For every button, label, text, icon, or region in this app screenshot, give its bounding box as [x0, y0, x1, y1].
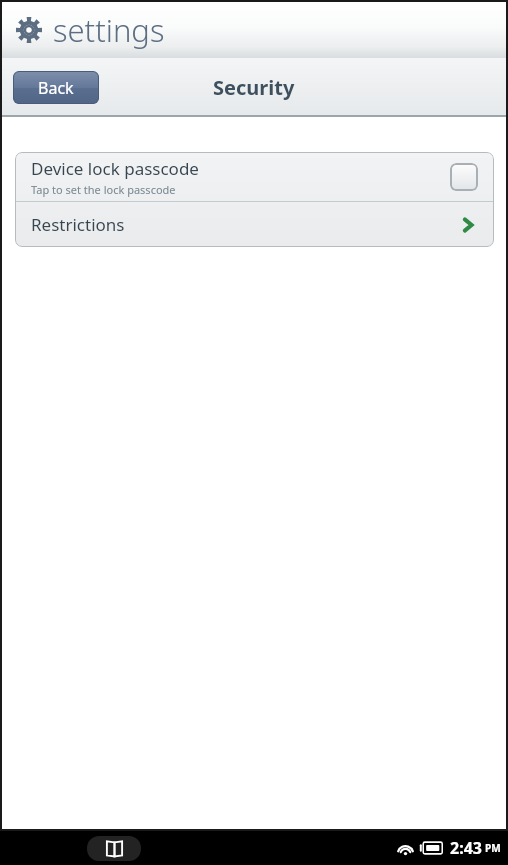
staticText: Restrictions — [31, 213, 458, 236]
staticText: PM — [485, 841, 501, 855]
staticText: Device lock passcode — [31, 157, 199, 180]
staticText: Tap to set the lock passcode — [31, 182, 176, 197]
button[interactable]: Device lock passcode — [15, 152, 494, 201]
button[interactable]: Restrictions — [15, 202, 494, 247]
staticText: Security — [213, 74, 295, 101]
staticText: 2:43 — [450, 837, 482, 859]
staticText: Back — [38, 77, 74, 99]
button[interactable]: Back — [13, 71, 99, 104]
staticText: settings — [53, 9, 165, 51]
button[interactable]: Device lock passcode toggle — [450, 163, 478, 191]
button[interactable]: Library — [87, 836, 141, 861]
